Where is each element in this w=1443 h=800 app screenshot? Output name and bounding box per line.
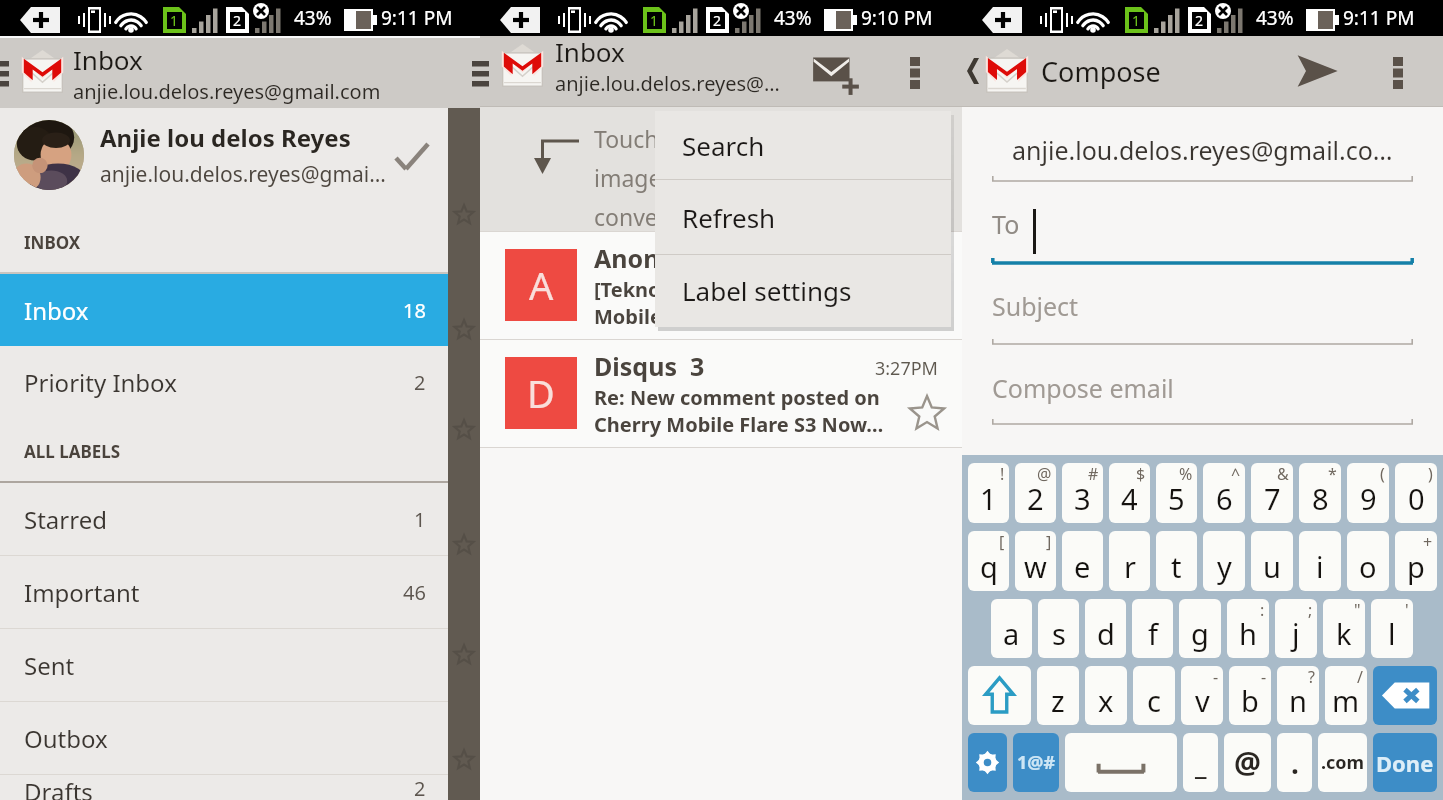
staticText: %: [1179, 463, 1193, 485]
button[interactable]: o: [1347, 531, 1389, 591]
staticText: $: [1136, 463, 1146, 485]
button[interactable]: More options: [1373, 46, 1423, 96]
button[interactable]: 5: [1156, 463, 1197, 523]
staticText: 1: [1132, 11, 1141, 30]
staticText: 3:27PM: [875, 356, 938, 381]
button[interactable]: r: [1109, 531, 1150, 591]
staticText: 5: [1168, 479, 1185, 518]
staticText: 46: [403, 579, 426, 606]
button[interactable]: Sent: [0, 629, 448, 701]
button[interactable]: 1: [968, 463, 1009, 523]
button[interactable]: 3: [1062, 463, 1103, 523]
button[interactable]: 7: [1251, 463, 1293, 523]
staticText: g: [1191, 614, 1209, 653]
button[interactable]: d: [1085, 599, 1126, 658]
staticText: Sent: [24, 649, 426, 682]
button[interactable]: m: [1325, 666, 1367, 725]
button[interactable]: 2: [1015, 463, 1056, 523]
button[interactable]: a: [991, 599, 1032, 658]
button[interactable]: h: [1227, 599, 1269, 658]
button[interactable]: Anjie lou delos Reyes: [0, 108, 448, 202]
staticText: anjie.lou.delos.reyes@…: [555, 70, 780, 97]
button[interactable]: b: [1229, 666, 1271, 725]
button[interactable]: p: [1395, 531, 1437, 591]
button[interactable]: Search: [655, 111, 951, 179]
staticText: j: [1292, 614, 1300, 653]
button[interactable]: Send: [1287, 41, 1347, 101]
button[interactable]: Starred: [0, 483, 448, 555]
button[interactable]: i: [1299, 531, 1341, 591]
staticText: 2: [1195, 11, 1204, 30]
staticText: @: [1234, 742, 1261, 783]
button[interactable]: z: [1037, 666, 1079, 725]
staticText: !: [1000, 463, 1005, 485]
staticText: 8: [1312, 479, 1329, 518]
staticText: 9:11 PM: [381, 5, 453, 31]
staticText: o: [1359, 547, 1377, 586]
button[interactable]: w: [1015, 531, 1056, 591]
button[interactable]: Done: [1373, 733, 1437, 792]
staticText: Compose email: [992, 371, 1174, 405]
button[interactable]: A: [480, 232, 962, 340]
button[interactable]: _: [1183, 733, 1218, 792]
button[interactable]: Label settings: [655, 255, 951, 326]
button[interactable]: Navigate up: [962, 51, 984, 91]
button[interactable]: 8: [1299, 463, 1341, 523]
staticText: a: [1003, 614, 1020, 653]
button[interactable]: 4: [1109, 463, 1150, 523]
button[interactable]: To: [992, 205, 1413, 267]
staticText: Label settings: [682, 273, 852, 308]
button[interactable]: q: [968, 531, 1009, 591]
button[interactable]: .: [1277, 733, 1312, 792]
button[interactable]: .com: [1318, 733, 1367, 792]
button[interactable]: Open navigation drawer: [480, 51, 500, 91]
button[interactable]: Space: [1065, 733, 1177, 792]
button[interactable]: t: [1156, 531, 1197, 591]
button[interactable]: Refresh: [655, 180, 951, 254]
button[interactable]: Compose email: [992, 369, 1413, 428]
button[interactable]: e: [1062, 531, 1103, 591]
staticText: -: [1213, 666, 1219, 688]
staticText: 9:11 PM: [1343, 5, 1415, 31]
button[interactable]: u: [1251, 531, 1293, 591]
staticText: x: [1098, 681, 1114, 720]
staticText: To: [992, 207, 1020, 241]
button[interactable]: Priority Inbox: [0, 346, 448, 418]
button[interactable]: k: [1323, 599, 1365, 658]
button[interactable]: s: [1038, 599, 1079, 658]
button[interactable]: @: [1224, 733, 1271, 792]
button[interactable]: y: [1203, 531, 1245, 591]
staticText: A: [529, 259, 554, 311]
button[interactable]: Compose: [804, 39, 868, 103]
staticText: Outbox: [24, 722, 426, 755]
button[interactable]: Backspace: [1373, 666, 1437, 725]
button[interactable]: v: [1181, 666, 1223, 725]
button[interactable]: j: [1275, 599, 1317, 658]
button[interactable]: Shift: [968, 666, 1031, 725]
button[interactable]: Keyboard settings: [968, 733, 1007, 792]
button[interactable]: D: [480, 340, 962, 448]
staticText: Anjie lou delos Reyes: [100, 121, 351, 154]
button[interactable]: f: [1132, 599, 1173, 658]
button[interactable]: anjie.lou.delos.reyes@gmail.co…: [992, 131, 1413, 185]
button[interactable]: Important: [0, 556, 448, 628]
button[interactable]: n: [1277, 666, 1319, 725]
button[interactable]: g: [1179, 599, 1221, 658]
button[interactable]: l: [1371, 599, 1413, 658]
button[interactable]: 9: [1347, 463, 1389, 523]
staticText: Refresh: [682, 200, 776, 235]
button[interactable]: x: [1085, 666, 1127, 725]
button[interactable]: 0: [1395, 463, 1437, 523]
button[interactable]: Outbox: [0, 702, 448, 774]
button[interactable]: 1@#: [1013, 733, 1059, 792]
staticText: q: [980, 547, 998, 586]
button[interactable]: 6: [1203, 463, 1245, 523]
staticText: 1: [650, 11, 659, 30]
staticText: 2: [713, 11, 722, 30]
button[interactable]: More options: [890, 46, 940, 96]
button[interactable]: Drafts: [0, 775, 448, 800]
staticText: Starred: [24, 503, 414, 536]
button[interactable]: Subject: [992, 287, 1413, 348]
button[interactable]: Inbox: [0, 274, 448, 346]
button[interactable]: c: [1133, 666, 1175, 725]
